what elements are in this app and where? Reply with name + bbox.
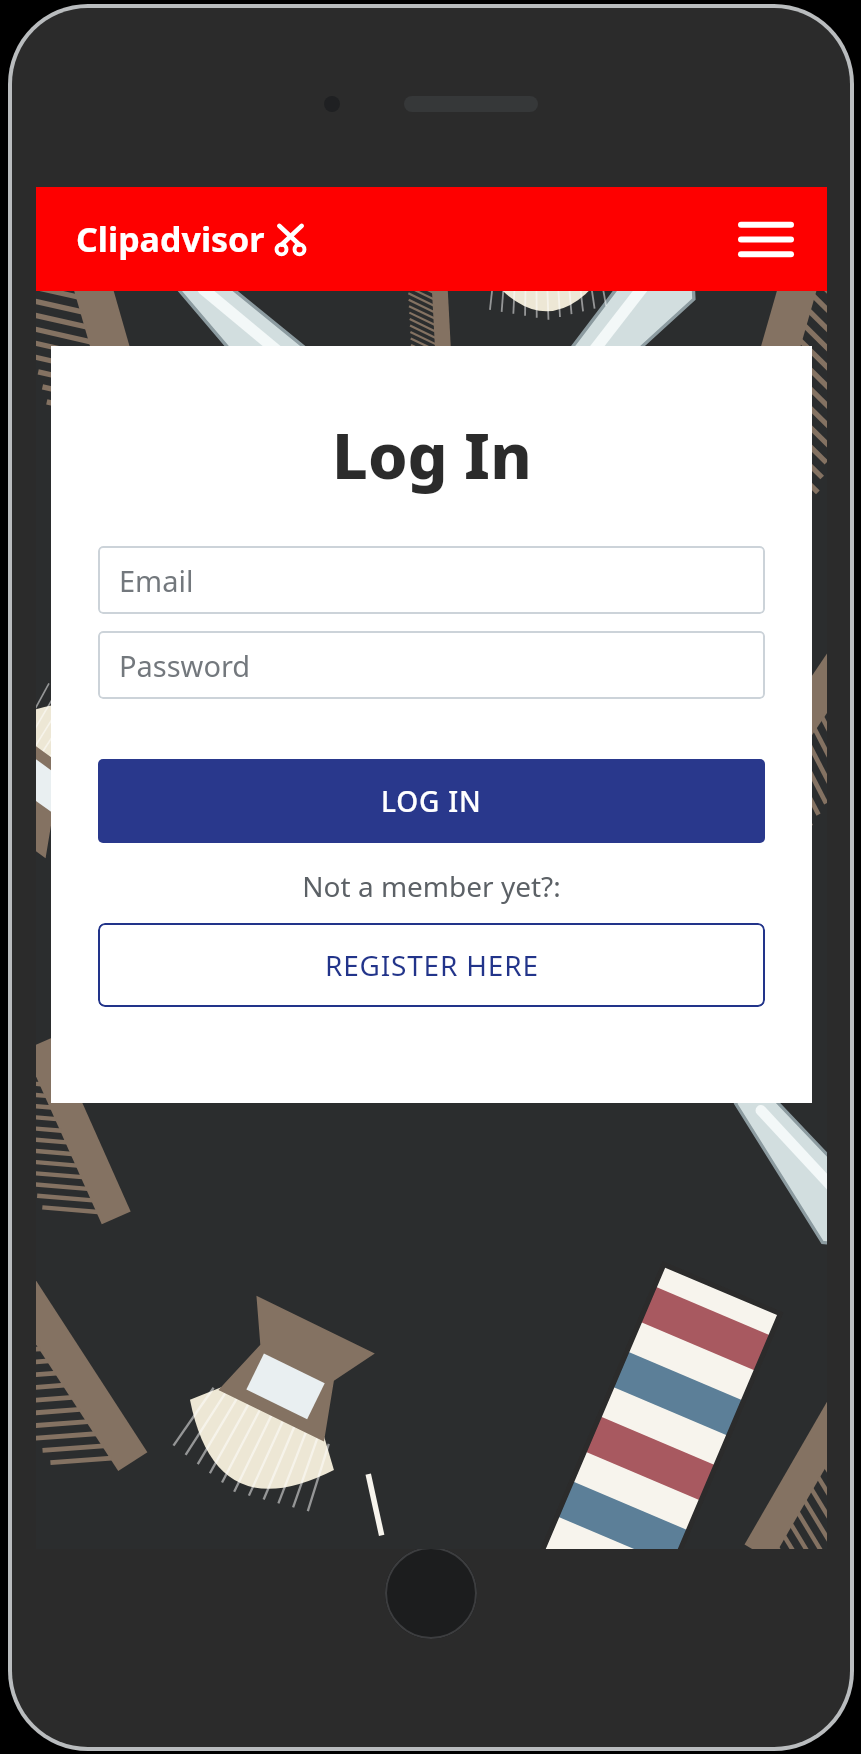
staticText: Email [119, 561, 194, 600]
staticText: Log In [332, 412, 532, 498]
button[interactable]: LOG IN [98, 759, 765, 843]
staticText: Clipadvisor [76, 216, 265, 262]
button[interactable]: Open navigation menu [737, 210, 795, 268]
button[interactable]: Password [98, 631, 765, 699]
staticText: Not a member yet?: [302, 867, 561, 905]
button[interactable]: Email [98, 546, 765, 614]
staticText: LOG IN [381, 782, 482, 820]
button[interactable]: Clipadvisor [76, 216, 306, 262]
staticText: Password [119, 646, 251, 685]
staticText: REGISTER HERE [325, 946, 539, 984]
button[interactable]: REGISTER HERE [98, 923, 765, 1007]
